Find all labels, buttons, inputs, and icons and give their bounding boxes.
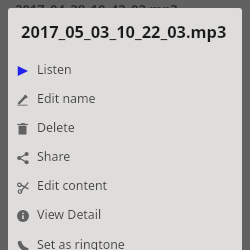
- button[interactable]: Share: [8, 143, 242, 172]
- staticText: 2017_04_28_10_42_02.mp3: [15, 0, 178, 18]
- staticText: Listen: [37, 61, 72, 78]
- button[interactable]: View Detail: [8, 201, 242, 230]
- button[interactable]: Set as ringtone: [8, 231, 242, 250]
- staticText: Set as ringtone: [37, 236, 125, 250]
- staticText: Edit content: [37, 177, 108, 194]
- button[interactable]: Listen: [8, 56, 242, 85]
- button[interactable]: Edit content: [8, 172, 242, 201]
- staticText: 2017_05_03_10_22_03.mp3: [21, 20, 227, 42]
- staticText: Delete: [37, 119, 75, 136]
- button[interactable]: Edit name: [8, 85, 242, 114]
- staticText: View Detail: [37, 206, 102, 223]
- button[interactable]: Delete: [8, 114, 242, 143]
- staticText: Share: [37, 148, 71, 165]
- staticText: Edit name: [37, 90, 96, 107]
